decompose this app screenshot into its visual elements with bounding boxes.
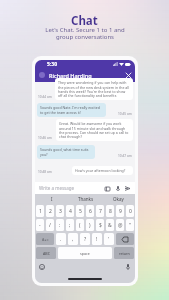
staticText: #+=	[42, 237, 49, 242]
staticText: :	[59, 222, 61, 229]
staticText: They were wondering if you can help with…	[58, 80, 130, 98]
staticText: -	[39, 222, 41, 229]
button[interactable]: Close	[124, 71, 133, 80]
button[interactable]: Send	[124, 185, 131, 192]
staticText: 9	[119, 208, 122, 215]
staticText: 4	[69, 208, 72, 215]
staticText: 5	[79, 208, 82, 215]
staticText: !	[96, 236, 98, 243]
staticText: $	[99, 222, 102, 229]
staticText: 5:30	[47, 61, 57, 68]
button[interactable]: space	[58, 247, 112, 259]
button[interactable]: 3	[56, 205, 64, 217]
button[interactable]: More symbols	[36, 233, 54, 245]
staticText: return	[119, 251, 130, 256]
button[interactable]: Emoji	[38, 263, 46, 271]
button[interactable]: Backspace	[116, 233, 134, 245]
button[interactable]: 1	[36, 205, 44, 217]
button[interactable]: I	[35, 194, 69, 204]
staticText: Chat	[71, 13, 98, 29]
staticText: 8	[109, 208, 112, 215]
staticText: Write a message	[39, 185, 75, 191]
button[interactable]: "	[126, 219, 134, 231]
button[interactable]: return	[114, 247, 134, 259]
button[interactable]: (	[76, 219, 84, 231]
button[interactable]: Profile	[39, 72, 45, 78]
staticText: @	[118, 222, 123, 229]
staticText: Thanks	[78, 196, 94, 202]
staticText: 10:47 am	[118, 154, 132, 158]
button[interactable]: )	[86, 219, 94, 231]
button[interactable]: :	[56, 219, 64, 231]
staticText: ;	[69, 222, 71, 229]
button[interactable]: /	[46, 219, 54, 231]
button[interactable]: 4	[66, 205, 74, 217]
staticText: 7	[99, 208, 102, 215]
button[interactable]: They were wondering if you can help with…	[58, 80, 130, 98]
button[interactable]: 7	[96, 205, 104, 217]
button[interactable]: ,	[68, 233, 78, 245]
staticText: space	[80, 251, 90, 256]
button[interactable]: Okay	[102, 194, 135, 204]
button[interactable]: &	[106, 219, 114, 231]
staticText: Great. Would be awesome if you work arou…	[59, 121, 130, 139]
button[interactable]: Sounds good Nate. I'm really excited to …	[40, 105, 103, 115]
staticText: Sounds good, what time suits you?	[40, 147, 92, 157]
button[interactable]: 2	[46, 205, 54, 217]
button[interactable]: ABC	[36, 247, 56, 259]
staticText: Richard Harding	[49, 72, 92, 79]
staticText: Let's Chat. Secure 1 to 1 and group conv…	[45, 26, 125, 41]
button[interactable]: How's your afternoon looking?	[75, 168, 130, 173]
staticText: 0	[129, 208, 132, 215]
button[interactable]: Dictate	[124, 263, 132, 271]
button[interactable]: 0	[126, 205, 134, 217]
button[interactable]: Thanks	[69, 194, 102, 204]
staticText: Sounds good Nate. I'm really excited to …	[40, 105, 103, 115]
staticText: ?	[84, 236, 87, 243]
staticText: 10:45 am	[118, 112, 132, 116]
staticText: ABC	[43, 251, 50, 256]
staticText: "	[129, 222, 132, 229]
button[interactable]: .	[56, 233, 66, 245]
button[interactable]: !	[92, 233, 102, 245]
staticText: )	[89, 222, 91, 229]
staticText: 6	[89, 208, 92, 215]
button[interactable]: $	[96, 219, 104, 231]
staticText: 10:46 am	[38, 136, 52, 140]
staticText: 3	[59, 208, 62, 215]
button[interactable]: Voice message	[114, 185, 121, 192]
button[interactable]: Great. Would be awesome if you work arou…	[59, 121, 130, 139]
staticText: 2	[49, 208, 52, 215]
button[interactable]: Attach image	[104, 185, 111, 192]
button[interactable]: 5	[76, 205, 84, 217]
staticText: 10:44 am	[38, 95, 52, 99]
staticText: '	[108, 236, 110, 243]
button[interactable]: Sounds good, what time suits you?	[40, 147, 92, 157]
button[interactable]: ;	[66, 219, 74, 231]
staticText: &	[108, 222, 112, 229]
staticText: How's your afternoon looking?	[75, 168, 126, 173]
staticText: ,	[72, 236, 74, 243]
staticText: Okay	[113, 196, 124, 202]
staticText: /	[49, 222, 51, 229]
button[interactable]: -	[36, 219, 44, 231]
button[interactable]: ?	[80, 233, 90, 245]
staticText: (	[79, 222, 81, 229]
button[interactable]: 6	[86, 205, 94, 217]
button[interactable]: 8	[106, 205, 114, 217]
staticText: .	[60, 236, 62, 243]
staticText: 10:48 am	[38, 170, 52, 174]
button[interactable]: '	[104, 233, 114, 245]
button[interactable]: 9	[116, 205, 124, 217]
staticText: I	[51, 196, 53, 202]
button[interactable]: @	[116, 219, 124, 231]
staticText: 1	[39, 208, 42, 215]
